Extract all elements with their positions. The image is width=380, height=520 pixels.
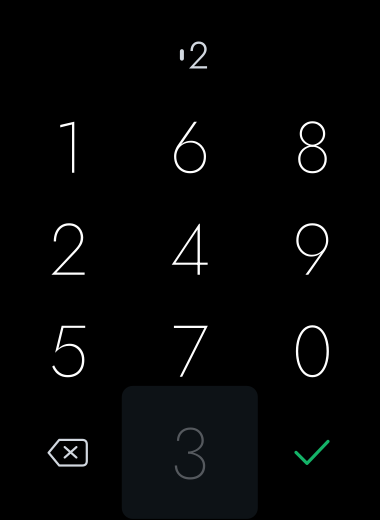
button[interactable]: 1 — [14, 100, 124, 196]
staticText: 8 — [294, 96, 331, 200]
button[interactable]: 7 — [135, 304, 245, 400]
button[interactable]: Delete — [18, 402, 118, 502]
button[interactable]: 0 — [257, 304, 367, 400]
staticText: 0 — [292, 300, 332, 404]
button[interactable]: 4 — [135, 202, 245, 298]
button[interactable]: 8 — [257, 100, 367, 196]
staticText: 7 — [171, 300, 208, 404]
staticText: 3 — [170, 403, 209, 506]
button[interactable]: 6 — [135, 100, 245, 196]
staticText: 2 — [50, 198, 88, 302]
button[interactable]: 2 — [14, 202, 124, 298]
button[interactable]: 9 — [257, 202, 367, 298]
button[interactable]: Confirm — [262, 402, 362, 502]
staticText: 9 — [293, 198, 332, 302]
staticText: 4 — [170, 198, 210, 302]
staticText: 1 — [54, 96, 84, 200]
staticText: 6 — [170, 96, 209, 200]
button[interactable]: 5 — [14, 304, 124, 400]
button[interactable]: 3 — [122, 386, 258, 519]
staticText: 2 — [188, 29, 209, 82]
staticText: 5 — [49, 300, 89, 404]
